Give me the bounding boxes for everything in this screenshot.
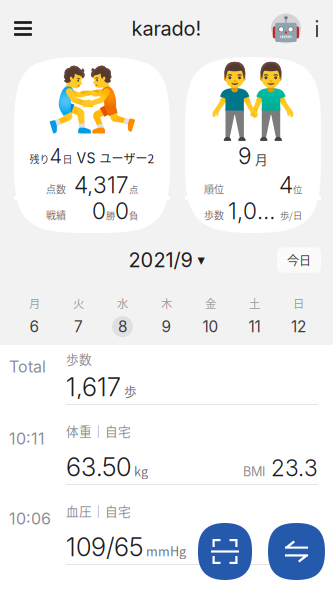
button[interactable]: Transfer — [268, 523, 325, 580]
staticText: 勝 — [106, 208, 115, 222]
staticText: 109/65 — [66, 532, 143, 562]
staticText: 23.3 — [265, 454, 318, 482]
staticText: 月 — [29, 295, 40, 311]
staticText: 0 — [92, 197, 106, 225]
staticText: 8 — [118, 317, 127, 336]
staticText: 🤼 — [44, 57, 140, 145]
staticText: ▾ — [197, 252, 204, 268]
staticText: 順位 — [204, 182, 224, 196]
button[interactable]: Total — [0, 345, 333, 405]
staticText: 11 — [248, 317, 260, 336]
button[interactable]: Scan — [198, 523, 252, 580]
staticText: 2021/9 — [128, 248, 192, 272]
staticText: 負 — [129, 208, 138, 222]
staticText: 10 — [202, 317, 218, 336]
staticText: 位 — [293, 182, 302, 196]
staticText: 10:06 — [9, 509, 51, 528]
staticText: mmHg — [143, 541, 186, 560]
staticText: 月 — [255, 150, 268, 168]
staticText: 体重｜自宅 — [66, 422, 131, 440]
staticText: 63.50 — [66, 452, 131, 482]
staticText: 土 — [249, 295, 260, 311]
staticText: VS — [72, 150, 99, 167]
staticText: 歩/日 — [280, 208, 302, 222]
button[interactable]: 火 — [56, 290, 100, 342]
staticText: 戦績 — [46, 208, 66, 222]
button[interactable]: 日 — [276, 290, 320, 342]
button[interactable]: 木 — [144, 290, 188, 342]
staticText: karado! — [131, 16, 201, 41]
button[interactable]: 今日 — [277, 247, 321, 273]
button[interactable]: 月 — [12, 290, 56, 342]
staticText: 10:11 — [9, 429, 45, 448]
staticText: 歩数 — [204, 208, 224, 222]
staticText: 日 — [62, 152, 72, 166]
staticText: BMI — [243, 464, 265, 479]
button[interactable]: 10:06 — [0, 485, 333, 565]
staticText: ユーザー2 — [99, 149, 154, 167]
staticText: 残り — [29, 152, 49, 166]
button[interactable]: 土 — [232, 290, 276, 342]
staticText: 歩 — [121, 381, 137, 400]
staticText: 血圧｜自宅 — [66, 502, 131, 520]
staticText: 木 — [161, 295, 172, 311]
button[interactable]: 2021/9 — [128, 243, 204, 277]
staticText: 4 — [279, 171, 293, 199]
staticText: 4,317 — [74, 171, 129, 199]
staticText: 👬 — [208, 60, 298, 142]
staticText: kg — [131, 461, 148, 480]
staticText: 0 — [115, 197, 129, 225]
button[interactable]: Menu — [2, 0, 44, 57]
staticText: 今日 — [287, 251, 311, 269]
staticText: 点 — [129, 182, 138, 196]
staticText: 点数 — [46, 182, 66, 196]
staticText: 4 — [49, 144, 62, 168]
button[interactable]: Info — [303, 0, 331, 57]
button[interactable]: 金 — [188, 290, 232, 342]
staticText: 金 — [205, 295, 216, 311]
staticText: 1,097 — [228, 197, 280, 225]
staticText: 水 — [117, 295, 128, 311]
staticText: 火 — [73, 295, 84, 311]
staticText: 歩数 — [66, 350, 92, 368]
staticText: 12 — [291, 317, 306, 336]
staticText: 6 — [29, 317, 39, 336]
staticText: Total — [9, 357, 46, 376]
staticText: 7 — [74, 317, 83, 336]
button[interactable]: 水 — [100, 290, 144, 342]
staticText: 9 — [161, 317, 171, 336]
button[interactable]: Assistant — [269, 0, 303, 57]
staticText: 🤖 — [271, 15, 301, 42]
staticText: 1,617 — [66, 372, 121, 402]
button[interactable]: 10:11 — [0, 405, 333, 485]
staticText: 9 — [238, 142, 251, 170]
staticText: 日 — [293, 295, 304, 311]
